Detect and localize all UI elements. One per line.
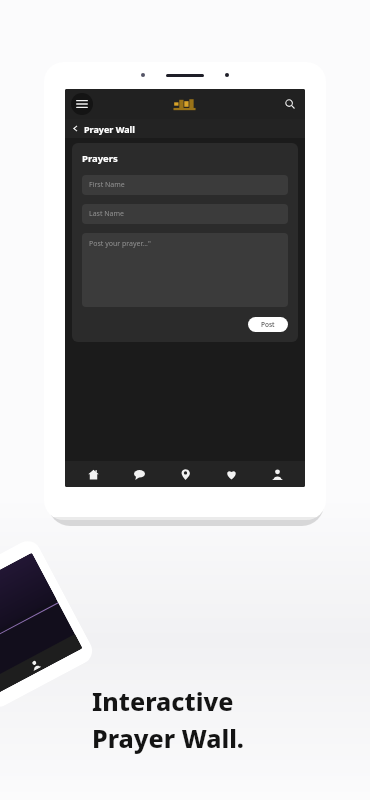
button[interactable]: Post your prayer..." — [82, 233, 288, 307]
button[interactable]: Messages — [121, 461, 157, 487]
button[interactable]: Locations — [167, 461, 203, 487]
button[interactable]: Profile — [259, 461, 295, 487]
button[interactable]: First Name — [82, 175, 288, 195]
staticText: Prayers — [82, 152, 118, 165]
button[interactable]: Prayer Wall — [65, 119, 305, 138]
button[interactable]: Search — [282, 96, 298, 112]
button[interactable]: Post — [248, 317, 288, 332]
staticText: First Name — [89, 180, 125, 190]
staticText: Prayer Wall. — [92, 721, 244, 755]
staticText: Prayer Wall — [84, 123, 135, 135]
staticText: Post your prayer..." — [89, 239, 151, 249]
staticText: Interactive — [92, 684, 234, 718]
button[interactable]: Last Name — [82, 204, 288, 224]
staticText: Post — [261, 320, 275, 329]
button[interactable]: Menu — [71, 93, 93, 115]
staticText: Last Name — [89, 209, 125, 219]
button[interactable]: Favorites — [213, 461, 249, 487]
button[interactable]: Home — [75, 461, 111, 487]
